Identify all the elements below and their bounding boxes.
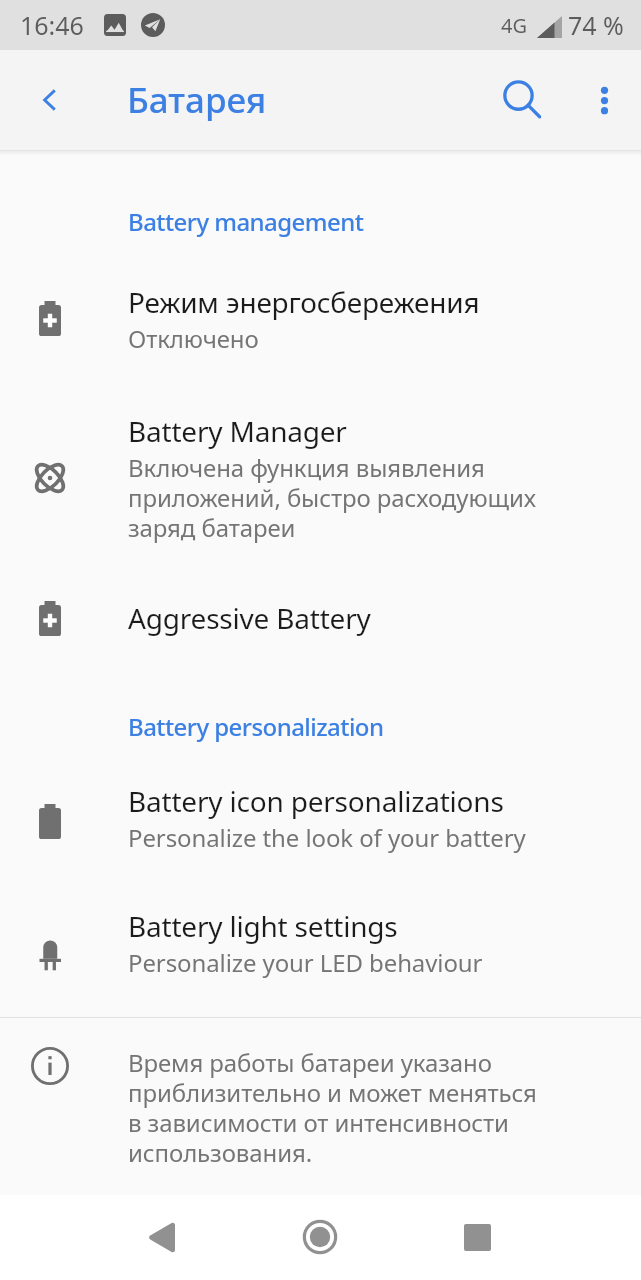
button[interactable]: More options <box>567 63 641 137</box>
staticText: Personalize your LED behaviour <box>128 948 483 978</box>
staticText: Включена функция выявления приложений, б… <box>128 453 545 543</box>
button[interactable]: Back <box>0 50 100 150</box>
button[interactable]: Aggressive Battery <box>0 601 641 647</box>
button[interactable]: Battery personalization <box>0 711 641 743</box>
button[interactable]: Battery Manager <box>0 414 641 540</box>
staticText: Батарея <box>127 76 267 124</box>
staticText: 4G <box>501 12 527 39</box>
staticText: 74 % <box>568 8 624 42</box>
staticText: Время работы батареи указано приблизител… <box>128 1048 545 1168</box>
staticText: 16:46 <box>20 8 84 42</box>
button[interactable]: Battery light settings <box>0 909 641 975</box>
staticText: Battery icon personalizations <box>128 784 504 820</box>
staticText: Режим энергосбережения <box>128 285 480 321</box>
button[interactable]: Battery management <box>0 206 641 238</box>
button[interactable]: Search <box>477 55 567 145</box>
staticText: Battery management <box>128 206 364 238</box>
button[interactable]: Back <box>122 1197 202 1277</box>
staticText: Battery light settings <box>128 909 398 945</box>
staticText: Personalize the look of your battery <box>128 823 526 853</box>
staticText: Отключено <box>128 324 259 354</box>
staticText: Aggressive Battery <box>128 601 371 637</box>
button[interactable]: Режим энергосбережения <box>0 285 641 351</box>
staticText: Battery personalization <box>128 711 384 743</box>
staticText: Battery Manager <box>128 414 347 450</box>
button[interactable]: Home <box>280 1197 360 1277</box>
button[interactable]: Recents <box>437 1197 517 1277</box>
button[interactable]: Battery icon personalizations <box>0 784 641 850</box>
